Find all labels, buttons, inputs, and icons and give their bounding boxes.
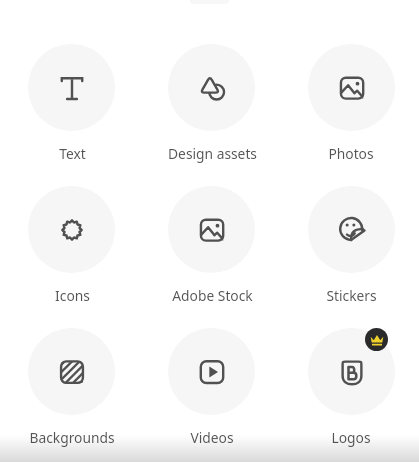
button[interactable]: Premium bbox=[365, 328, 388, 351]
button[interactable]: Photos bbox=[308, 44, 395, 131]
button[interactable]: Text bbox=[28, 44, 115, 131]
button[interactable]: Logos bbox=[308, 328, 395, 415]
button[interactable]: Stickers bbox=[308, 186, 395, 273]
button[interactable]: Design assets bbox=[168, 44, 255, 131]
staticText: Icons bbox=[55, 286, 90, 305]
staticText: Photos bbox=[328, 144, 374, 163]
button[interactable]: Icons bbox=[28, 186, 115, 273]
button[interactable]: Videos bbox=[168, 328, 255, 415]
button[interactable]: Adobe Stock bbox=[168, 186, 255, 273]
staticText: Videos bbox=[190, 428, 234, 447]
staticText: Backgrounds bbox=[29, 428, 115, 447]
staticText: Text bbox=[59, 144, 86, 163]
staticText: Logos bbox=[331, 428, 371, 447]
staticText: Adobe Stock bbox=[172, 286, 253, 305]
staticText: Stickers bbox=[326, 286, 377, 305]
staticText: Design assets bbox=[168, 144, 257, 163]
button[interactable]: Backgrounds bbox=[28, 328, 115, 415]
